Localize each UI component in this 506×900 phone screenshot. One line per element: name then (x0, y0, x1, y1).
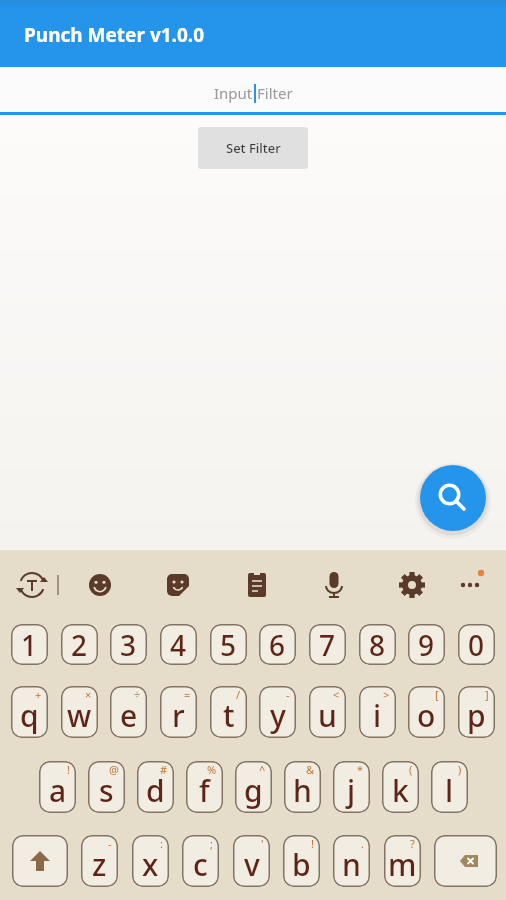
button[interactable]: 4 (160, 624, 197, 665)
staticText: 9 (418, 626, 435, 664)
staticText: d (146, 770, 165, 811)
button[interactable]: 8 (359, 624, 396, 665)
staticText: ? (410, 836, 415, 851)
button[interactable]: c (182, 835, 219, 887)
staticText: - (108, 836, 112, 851)
staticText: ) (458, 762, 462, 777)
staticText: c (193, 844, 208, 885)
staticText: 5 (220, 626, 237, 664)
button[interactable] (12, 835, 68, 887)
staticText: y (270, 695, 286, 736)
button[interactable]: o (408, 686, 445, 738)
staticText: Punch Meter v1.0.0 (24, 22, 205, 48)
staticText: . (361, 836, 364, 851)
staticText: [ (435, 687, 439, 702)
button[interactable]: e (110, 686, 147, 738)
button[interactable]: f (186, 761, 223, 813)
button[interactable]: i (359, 686, 396, 738)
staticText: 1 (21, 626, 38, 664)
button[interactable]: 0 (458, 624, 495, 665)
staticText: 4 (170, 626, 187, 664)
button[interactable]: p (458, 686, 495, 738)
staticText: ^ (259, 762, 266, 777)
staticText: g (244, 770, 263, 811)
staticText: 7 (319, 626, 336, 664)
button[interactable]: b (283, 835, 320, 887)
button[interactable]: g (235, 761, 272, 813)
button[interactable]: r (160, 686, 197, 738)
staticText: r (172, 695, 185, 736)
button[interactable]: q (11, 686, 48, 738)
staticText: ( (409, 762, 413, 777)
button[interactable]: v (233, 835, 270, 887)
staticText: Input (214, 83, 253, 103)
button[interactable]: m (384, 835, 421, 887)
staticText: w (67, 695, 92, 736)
staticText: f (199, 770, 210, 811)
button[interactable]: k (382, 761, 419, 813)
button[interactable]: 2 (61, 624, 98, 665)
staticText: & (306, 762, 315, 777)
staticText: % (207, 762, 217, 777)
staticText: 3 (120, 626, 137, 664)
button[interactable]: u (309, 686, 346, 738)
staticText: > (383, 687, 390, 702)
staticText: h (293, 770, 312, 811)
button[interactable]: h (284, 761, 321, 813)
staticText: ; (210, 836, 213, 851)
staticText: s (99, 770, 114, 811)
staticText: t (223, 695, 235, 736)
staticText: * (357, 762, 364, 777)
button[interactable]: a (39, 761, 76, 813)
button[interactable]: 3 (110, 624, 147, 665)
staticText: u (318, 695, 337, 736)
button[interactable]: Input (0, 67, 506, 112)
button[interactable]: 1 (11, 624, 48, 665)
staticText: ! (67, 762, 70, 777)
staticText: m (388, 844, 417, 885)
staticText: a (49, 770, 67, 811)
staticText: n (342, 844, 361, 885)
staticText: b (292, 844, 311, 885)
staticText: q (20, 695, 39, 736)
staticText: 2 (71, 626, 88, 664)
staticText: j (347, 770, 356, 811)
button[interactable]: x (132, 835, 169, 887)
staticText: e (120, 695, 138, 736)
staticText: i (373, 695, 382, 736)
staticText: x (142, 844, 159, 885)
staticText: p (467, 695, 486, 736)
staticText: : (160, 836, 163, 851)
staticText: - (286, 687, 290, 702)
staticText: Filter (257, 83, 293, 103)
staticText: / (236, 687, 241, 702)
button[interactable]: l (431, 761, 468, 813)
staticText: l (445, 770, 454, 811)
staticText: + (35, 687, 42, 702)
button[interactable]: z (81, 835, 118, 887)
button[interactable]: w (61, 686, 98, 738)
button[interactable]: 9 (408, 624, 445, 665)
button[interactable]: 6 (259, 624, 296, 665)
button[interactable]: 7 (309, 624, 346, 665)
button[interactable]: t (210, 686, 247, 738)
staticText: o (417, 695, 436, 736)
button[interactable] (434, 835, 497, 887)
button[interactable]: d (137, 761, 174, 813)
button[interactable] (420, 465, 486, 531)
button[interactable]: n (333, 835, 370, 887)
staticText: × (85, 687, 92, 702)
button[interactable]: y (259, 686, 296, 738)
button[interactable]: Set Filter (198, 127, 308, 169)
button[interactable]: 5 (210, 624, 247, 665)
staticText: 0 (468, 626, 485, 664)
button[interactable]: j (333, 761, 370, 813)
staticText: v (244, 844, 260, 885)
staticText: 8 (369, 626, 386, 664)
staticText: k (392, 770, 409, 811)
button[interactable]: s (88, 761, 125, 813)
staticText: @ (109, 762, 119, 777)
staticText: = (184, 687, 191, 702)
staticText: ] (485, 687, 489, 702)
staticText: # (160, 762, 168, 777)
